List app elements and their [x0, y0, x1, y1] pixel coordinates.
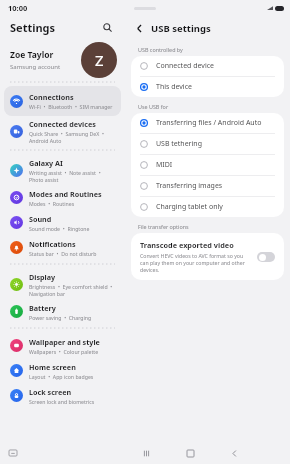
staticText: Connected device	[156, 61, 215, 71]
button[interactable]: Transferring images	[131, 176, 284, 196]
staticText: Modes and Routines	[29, 189, 102, 199]
staticText: Battery	[29, 303, 56, 313]
staticText: Writing assist • Note assist • Photo ass…	[29, 169, 115, 183]
button[interactable]: USB tethering	[131, 134, 284, 154]
button[interactable]: Display	[4, 269, 121, 299]
button[interactable]: Charging tablet only	[131, 197, 284, 217]
staticText: File transfer options	[138, 223, 189, 230]
staticText: Sound mode • Ringtone	[29, 225, 90, 232]
staticText: Charging tablet only	[156, 202, 223, 212]
staticText: This device	[156, 82, 192, 92]
staticText: Transferring images	[156, 181, 223, 191]
button[interactable]: Galaxy AI	[4, 155, 121, 185]
button[interactable]: MIDI	[131, 155, 284, 175]
staticText: Settings	[10, 20, 56, 35]
staticText: Home screen	[29, 362, 76, 372]
staticText: Connected devices	[29, 119, 96, 129]
staticText: Modes • Routines	[29, 200, 75, 207]
staticText: Zoe Taylor	[10, 49, 54, 61]
staticText: Display	[29, 272, 56, 282]
button[interactable]: Back	[131, 20, 147, 36]
button[interactable]: Connected devices	[4, 116, 121, 146]
staticText: Wallpaper and style	[29, 337, 100, 347]
staticText: Notifications	[29, 239, 76, 249]
staticText: Power saving • Charging	[29, 314, 92, 321]
button[interactable]: Connections	[4, 86, 121, 116]
button[interactable]: Lock screen	[4, 383, 121, 408]
staticText: USB settings	[151, 22, 211, 35]
button[interactable]: Zoe Taylor	[0, 38, 125, 82]
button[interactable]: This device	[131, 77, 284, 97]
staticText: Brightness • Eye comfort shield • Naviga…	[29, 283, 115, 297]
button[interactable]: Recents	[138, 445, 154, 461]
staticText: Transferring files / Android Auto	[156, 118, 262, 128]
staticText: Convert HEVC videos to AVC format so you…	[140, 252, 251, 273]
button[interactable]: Keyboard	[6, 446, 20, 460]
staticText: MIDI	[156, 160, 173, 170]
staticText: Quick Share • Samsung DeX • Android Auto	[29, 130, 115, 144]
button[interactable]: Search	[99, 19, 115, 35]
staticText: Connections	[29, 92, 74, 102]
button[interactable]: Back	[226, 445, 242, 461]
button[interactable]: Wallpaper and style	[4, 333, 121, 358]
staticText: 10:00	[8, 3, 28, 13]
staticText: Wallpapers • Colour palette	[29, 348, 99, 355]
staticText: Lock screen	[29, 387, 72, 397]
button[interactable]: Transcode exported video	[131, 233, 284, 280]
staticText: Galaxy AI	[29, 158, 63, 168]
button[interactable]: Sound	[4, 210, 121, 235]
button[interactable]: Notifications	[4, 235, 121, 260]
staticText: Screen lock and biometrics	[29, 398, 95, 405]
staticText: Transcode exported video	[140, 240, 234, 250]
staticText: USB controlled by	[138, 46, 183, 53]
button[interactable]: Home screen	[4, 358, 121, 383]
button[interactable]: Modes and Routines	[4, 185, 121, 210]
button[interactable]: Connected device	[131, 56, 284, 76]
staticText: Sound	[29, 214, 52, 224]
staticText: Status bar • Do not disturb	[29, 250, 97, 257]
button[interactable]: Transferring files / Android Auto	[131, 113, 284, 133]
button[interactable]: Battery	[4, 299, 121, 324]
staticText: Wi-Fi • Bluetooth • SIM manager	[29, 103, 113, 110]
staticText: Layout • App icon badges	[29, 373, 94, 380]
staticText: Samsung account	[10, 63, 61, 71]
button[interactable]: Home	[182, 445, 198, 461]
staticText: Z	[95, 50, 104, 70]
staticText: USB tethering	[156, 139, 202, 149]
staticText: Use USB for	[138, 103, 169, 110]
